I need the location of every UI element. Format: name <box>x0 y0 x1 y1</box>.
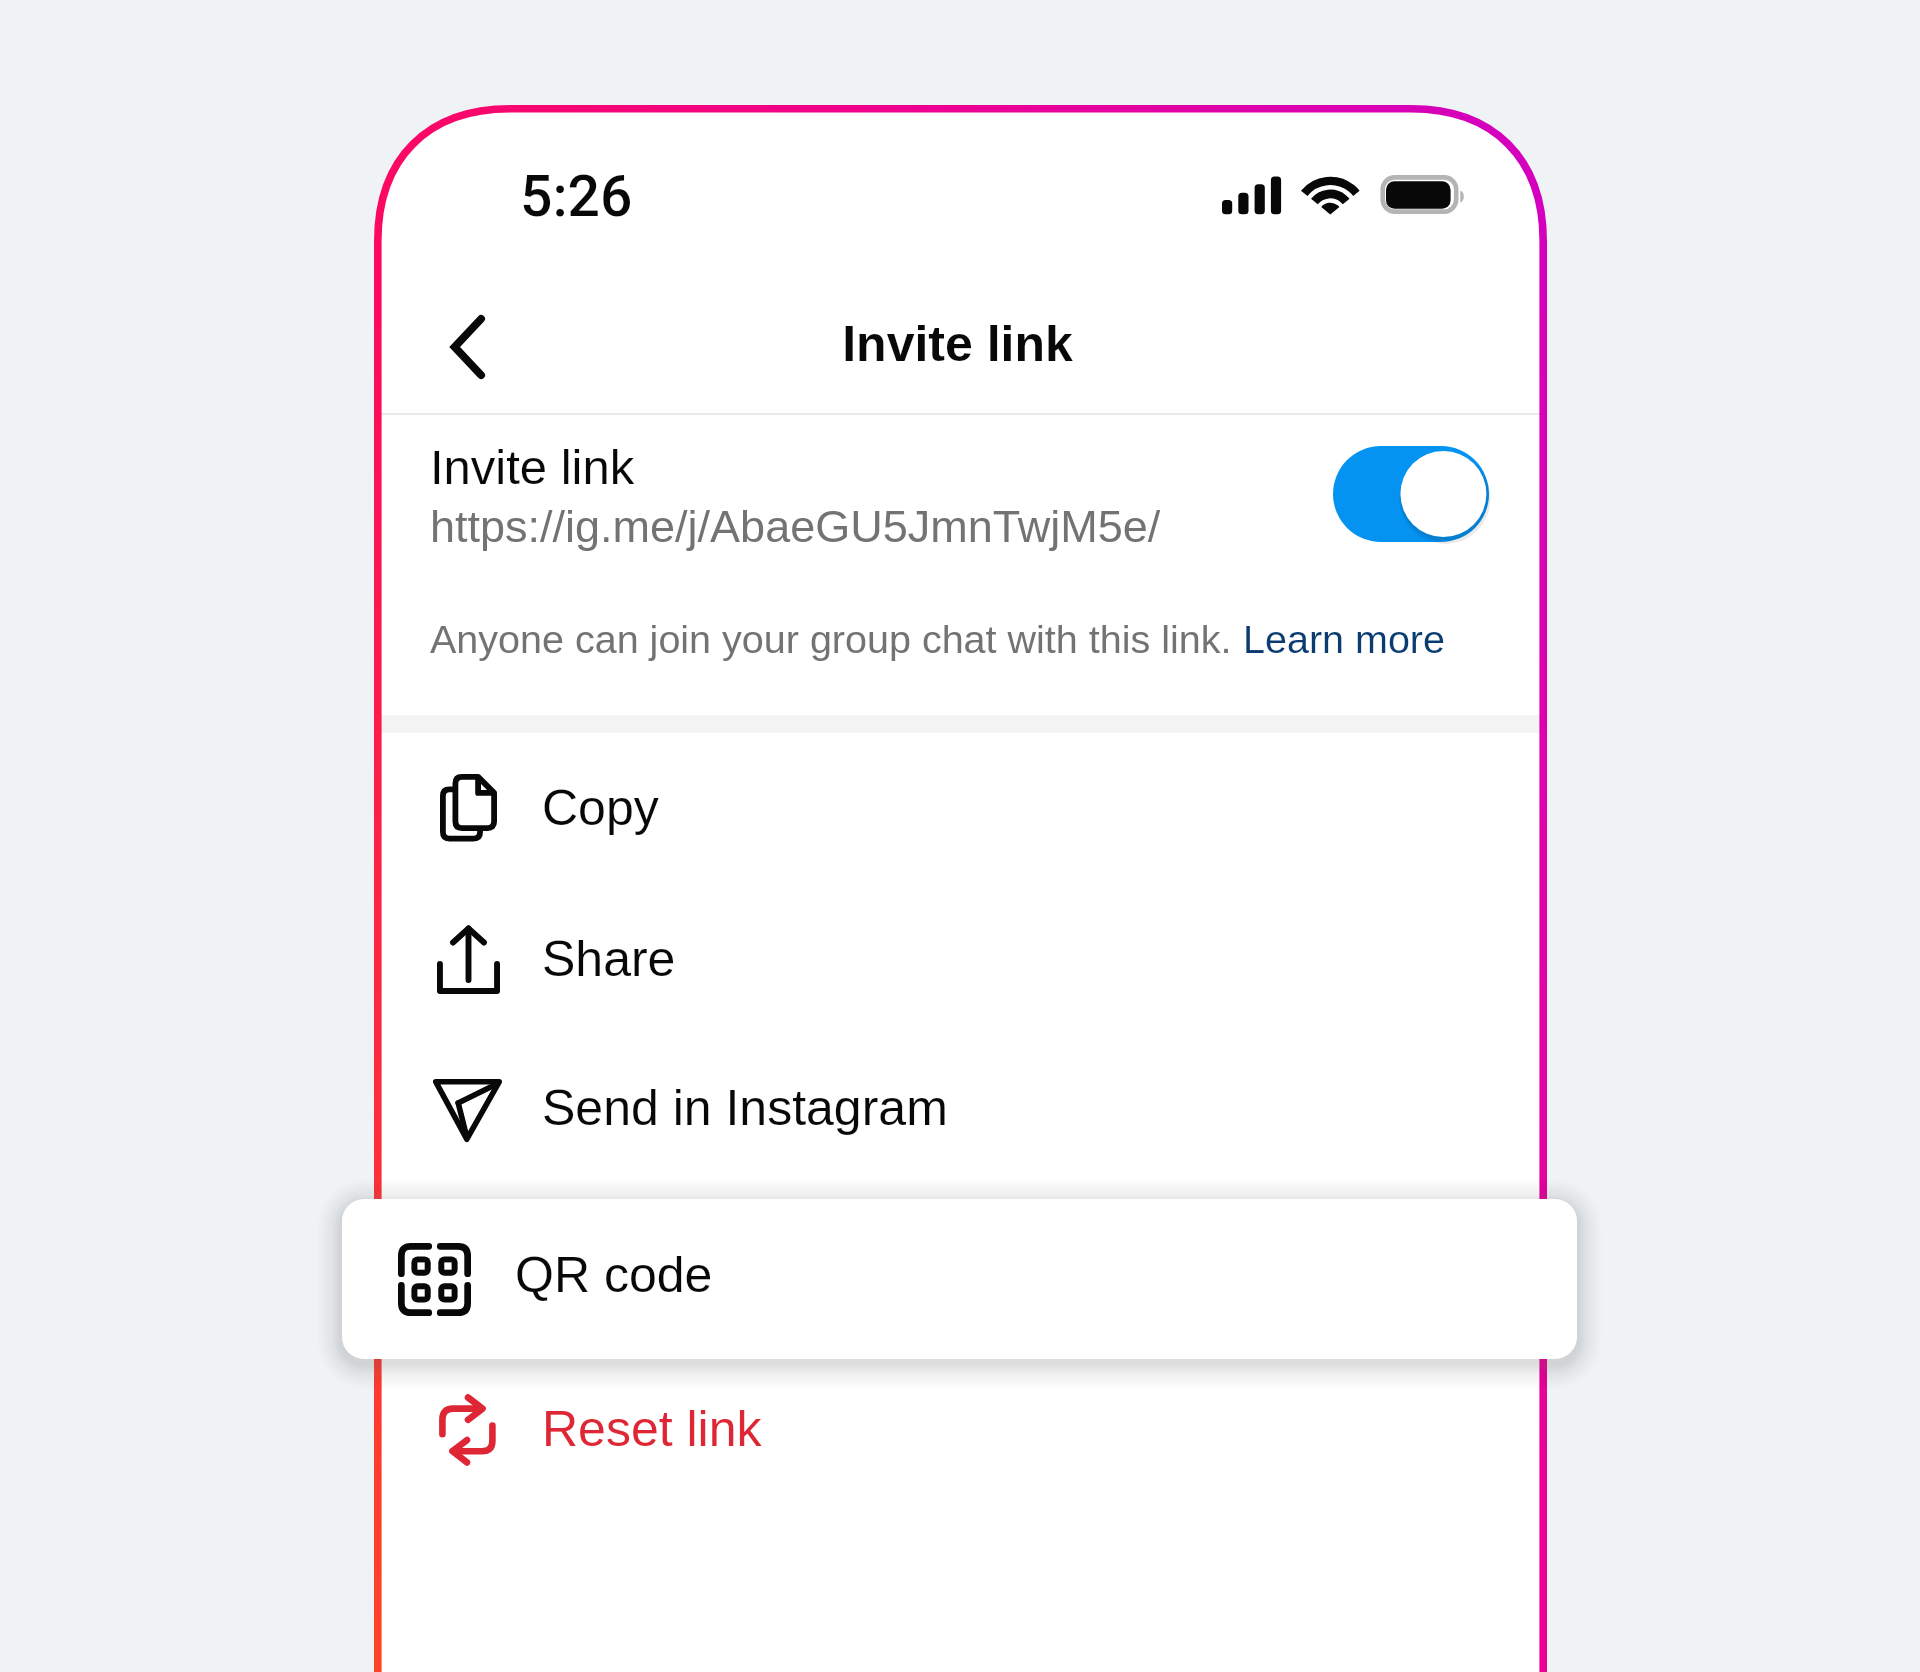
button[interactable]: Invite link enabled <box>1333 446 1489 542</box>
staticText: Reset link <box>542 1401 762 1457</box>
staticText: QR code <box>515 1247 713 1303</box>
button[interactable]: QR code <box>342 1199 1577 1359</box>
staticText: Send in Instagram <box>542 1080 948 1136</box>
staticText: https://ig.me/j/AbaeGU5JmnTwjM5e/ <box>430 501 1161 551</box>
staticText: Invite link <box>430 440 635 495</box>
staticText: Anyone can join your group chat with thi… <box>430 617 1243 661</box>
button[interactable]: Send in Instagram <box>374 1033 1547 1183</box>
staticText: Share <box>542 931 676 987</box>
button[interactable]: Share <box>374 884 1547 1034</box>
staticText: 5:26 <box>520 163 633 230</box>
staticText: Invite link <box>374 316 1544 372</box>
button[interactable]: Copy <box>374 733 1547 883</box>
button[interactable]: Learn more <box>1243 617 1445 661</box>
button[interactable]: Back <box>396 290 526 414</box>
button[interactable] <box>374 415 1547 715</box>
button[interactable]: Reset link <box>374 1352 1547 1502</box>
staticText: Copy <box>542 780 659 836</box>
